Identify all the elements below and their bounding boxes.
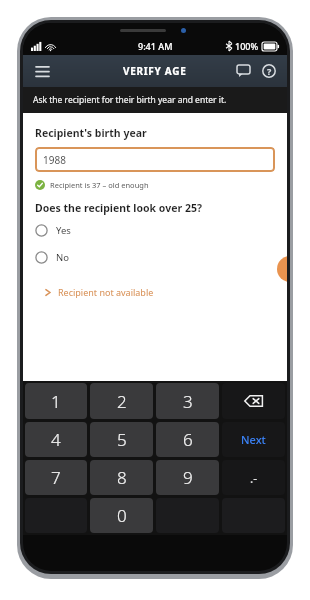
button[interactable]: 1988 (35, 147, 275, 172)
staticText: VERIFY AGE (123, 64, 187, 78)
staticText: 2 (117, 390, 127, 413)
button[interactable]: Yes (35, 224, 275, 237)
staticText: No (56, 251, 69, 264)
button[interactable]: No (35, 251, 275, 264)
staticText: 9:41 AM (138, 40, 173, 52)
staticText: ? (267, 65, 272, 77)
staticText: Next (241, 432, 266, 447)
staticText: 9 (183, 466, 193, 489)
staticText: 6 (183, 428, 193, 451)
staticText: 1 (51, 390, 61, 413)
button[interactable]: 2 (90, 383, 153, 419)
staticText: Does the recipient look over 25? (35, 201, 202, 215)
staticText: .- (250, 470, 258, 486)
staticText: 5 (117, 428, 127, 451)
button[interactable]: 6 (156, 422, 219, 457)
button[interactable]: 0 (90, 498, 153, 533)
button[interactable]: Recipient not available (45, 286, 154, 298)
staticText: 0 (117, 504, 127, 527)
staticText: 100% (235, 40, 259, 52)
button[interactable]: Action (277, 256, 287, 282)
staticText: Recipient's birth year (35, 126, 147, 140)
button[interactable]: 4 (25, 422, 87, 457)
button[interactable]: Next (222, 422, 285, 457)
button[interactable]: Backspace (222, 383, 285, 419)
button[interactable]: Menu (29, 58, 55, 84)
staticText: Recipient is 37 – old enough (50, 180, 149, 190)
staticText: Ask the recipient for their birth year a… (33, 94, 227, 106)
staticText: 7 (51, 466, 61, 489)
staticText: 8 (117, 466, 127, 489)
button[interactable]: 3 (156, 383, 219, 419)
button[interactable]: Symbols (222, 460, 285, 495)
staticText: 1988 (43, 153, 66, 167)
staticText: Recipient not available (58, 286, 154, 298)
button[interactable]: 5 (90, 422, 153, 457)
staticText: 3 (183, 390, 193, 413)
staticText: Yes (56, 224, 71, 237)
button[interactable]: 1 (25, 383, 87, 419)
button[interactable]: 7 (25, 460, 87, 495)
button[interactable]: Chat (230, 58, 256, 84)
staticText: 4 (51, 428, 61, 451)
button[interactable]: 9 (156, 460, 219, 495)
button[interactable]: Help (256, 58, 282, 84)
button[interactable]: 8 (90, 460, 153, 495)
